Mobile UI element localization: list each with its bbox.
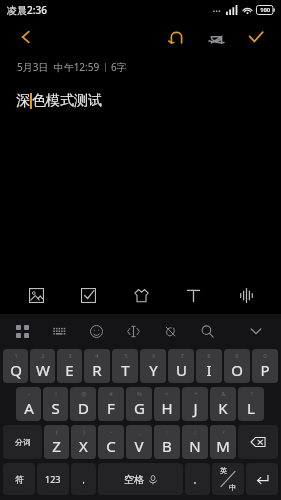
staticText: &	[221, 390, 226, 398]
staticText: ，	[79, 474, 88, 485]
staticText: M	[216, 436, 230, 456]
button[interactable]: 分词	[3, 425, 42, 459]
button[interactable]: 8	[196, 349, 222, 383]
button[interactable]: @	[70, 387, 96, 421]
staticText: _	[138, 428, 141, 436]
button[interactable]: 123	[37, 463, 69, 495]
button[interactable]: %	[126, 387, 152, 421]
staticText: )	[83, 428, 85, 436]
staticText: H	[161, 398, 173, 418]
staticText: :	[166, 428, 168, 436]
staticText: C	[106, 436, 116, 456]
staticText: 9	[235, 352, 239, 360]
staticText: A	[24, 398, 34, 418]
staticText: 6字	[111, 60, 127, 74]
staticText: !	[55, 390, 57, 398]
staticText: 符	[15, 474, 24, 485]
staticText: 英	[220, 466, 227, 475]
button[interactable]: /	[210, 425, 236, 459]
staticText: V	[134, 436, 144, 456]
staticText: 7	[180, 352, 184, 360]
staticText: @	[81, 390, 87, 398]
staticText: 色模式测试	[32, 92, 102, 110]
button[interactable]: Redo	[201, 22, 231, 52]
staticText: J	[193, 398, 198, 418]
button[interactable]: Done	[241, 22, 271, 52]
button[interactable]: Insert image	[19, 278, 53, 312]
button[interactable]: 英	[212, 463, 244, 495]
staticText: ~	[27, 390, 31, 398]
staticText: 2	[41, 352, 45, 360]
button[interactable]: Search	[195, 319, 219, 343]
staticText: 0	[263, 352, 267, 360]
button[interactable]: 0	[252, 349, 278, 383]
staticText: 6	[152, 352, 156, 360]
button[interactable]: ;	[182, 425, 208, 459]
button[interactable]: 9	[224, 349, 250, 383]
staticText: X	[79, 436, 88, 456]
button[interactable]: _	[126, 425, 152, 459]
button[interactable]: Apps	[10, 319, 34, 343]
button[interactable]: Clipboard	[158, 319, 182, 343]
staticText: 。	[193, 474, 202, 485]
button[interactable]: ?	[238, 387, 264, 421]
button[interactable]: 空格	[98, 463, 183, 495]
button[interactable]: Checklist	[71, 278, 105, 312]
button[interactable]: &	[210, 387, 236, 421]
button[interactable]: )	[71, 425, 96, 459]
staticText: F	[107, 398, 115, 418]
staticText: E	[65, 360, 74, 380]
button[interactable]: #	[98, 387, 124, 421]
staticText: 分词	[15, 437, 31, 447]
button[interactable]: *	[182, 387, 208, 421]
button[interactable]: Voice	[229, 278, 263, 312]
button[interactable]: !	[43, 387, 68, 421]
button[interactable]: Enter	[246, 463, 278, 495]
button[interactable]: 1	[3, 349, 28, 383]
button[interactable]: 2	[30, 349, 55, 383]
button[interactable]: Style	[124, 278, 158, 312]
staticText: T	[121, 360, 130, 380]
staticText: 5月3日 中午12:59	[17, 60, 100, 74]
staticText: 4	[95, 352, 99, 360]
button[interactable]: Emoji	[84, 319, 108, 343]
button[interactable]: (	[44, 425, 69, 459]
staticText: 3	[68, 352, 72, 360]
button[interactable]: Back	[10, 21, 42, 53]
button[interactable]: 6	[140, 349, 166, 383]
button[interactable]: Hide keyboard	[243, 318, 269, 344]
button[interactable]: ~	[16, 387, 41, 421]
staticText: ;	[194, 428, 196, 436]
staticText: R	[92, 360, 102, 380]
staticText: Y	[149, 360, 158, 380]
button[interactable]: 。	[185, 463, 210, 495]
button[interactable]: Cursor	[121, 319, 145, 343]
staticText: 5	[124, 352, 128, 360]
button[interactable]: 3	[57, 349, 82, 383]
staticText: ^	[165, 390, 169, 398]
staticText: N	[189, 436, 201, 456]
button[interactable]: 5	[112, 349, 138, 383]
button[interactable]: :	[154, 425, 180, 459]
staticText: 凌晨2:36	[7, 3, 47, 17]
button[interactable]: Backspace	[238, 425, 278, 459]
button[interactable]: Keyboard	[47, 319, 71, 343]
button[interactable]: 7	[168, 349, 194, 383]
button[interactable]: -	[98, 425, 124, 459]
staticText: L	[247, 398, 255, 418]
staticText: G	[134, 398, 145, 418]
staticText: O	[231, 360, 243, 380]
staticText: 123	[45, 473, 61, 485]
button[interactable]: 4	[84, 349, 110, 383]
button[interactable]: ^	[154, 387, 180, 421]
button[interactable]: Text format	[176, 278, 210, 312]
button[interactable]: 符	[3, 463, 35, 495]
button[interactable]: ，	[71, 463, 96, 495]
staticText: *	[194, 390, 198, 398]
staticText: 8	[207, 352, 211, 360]
staticText: #	[109, 390, 113, 398]
staticText: 中	[229, 483, 236, 492]
button[interactable]: Undo	[161, 22, 191, 52]
staticText: K	[218, 398, 228, 418]
staticText: (	[56, 428, 58, 436]
